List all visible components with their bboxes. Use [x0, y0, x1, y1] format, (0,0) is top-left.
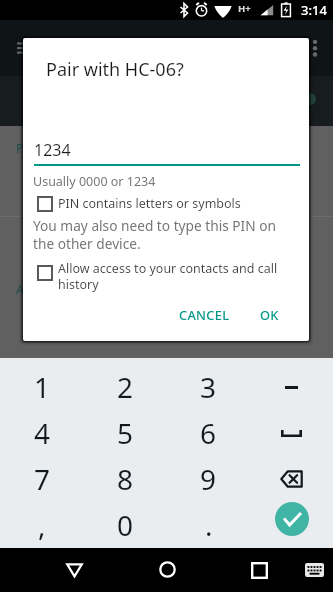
staticText: CANCEL [179, 306, 230, 323]
button[interactable]: Home [159, 561, 176, 578]
staticText: , [38, 506, 46, 544]
button[interactable]: CANCEL [171, 300, 238, 329]
staticText: 3 [200, 368, 217, 406]
button[interactable]: Backspace [250, 456, 333, 502]
button[interactable]: Dash [250, 364, 333, 410]
button[interactable]: Switch keyboard [305, 563, 324, 577]
staticText: Pair with HC-06? [46, 57, 184, 82]
button[interactable]: 7 [0, 456, 84, 502]
staticText: 3:14 [301, 1, 327, 19]
staticText: 1234 [34, 139, 71, 161]
staticText: 5 [117, 414, 134, 452]
other: Space [281, 430, 302, 437]
staticText: Usually 0000 or 1234 [33, 173, 156, 190]
button[interactable]: PIN contains letters or symbols [23, 195, 309, 212]
button[interactable]: Allow access to your contacts and call h… [23, 260, 309, 292]
button[interactable]: Recent apps [251, 562, 268, 579]
button[interactable]: 0 [84, 502, 167, 548]
staticText: Allow access to your contacts and call h… [58, 260, 285, 292]
button[interactable]: . [167, 502, 250, 548]
staticText: PIN contains letters or symbols [58, 195, 241, 212]
staticText: 6 [200, 414, 217, 452]
staticText: 2 [117, 368, 134, 406]
staticText: 4 [34, 414, 51, 452]
button[interactable]: 4 [0, 410, 84, 456]
staticText: You may also need to type this PIN on th… [33, 216, 276, 253]
staticText: AVAILABLE DEVICES [16, 281, 129, 297]
staticText: OK [260, 306, 279, 323]
staticText: 1 [34, 368, 51, 406]
staticText: PAIRED DEVICES [16, 140, 109, 156]
button[interactable]: 6 [167, 410, 250, 456]
button[interactable]: Done [250, 502, 333, 548]
staticText: 8 [117, 460, 134, 498]
button[interactable]: 3 [167, 364, 250, 410]
button[interactable]: OK [252, 300, 287, 329]
other: Backspace [280, 470, 303, 488]
staticText: 7 [34, 460, 51, 498]
button[interactable]: Space [250, 410, 333, 456]
button[interactable]: Navigate up [12, 34, 40, 62]
button[interactable]: , [0, 502, 84, 548]
button[interactable]: 9 [167, 456, 250, 502]
button[interactable]: Back [66, 561, 83, 578]
staticText: H+ [238, 2, 251, 15]
button[interactable]: More options [304, 37, 326, 59]
staticText: . [205, 506, 213, 544]
button[interactable]: 8 [84, 456, 167, 502]
staticText: 9 [200, 460, 217, 498]
button[interactable]: Done [275, 502, 309, 536]
staticText: 0 [117, 506, 134, 544]
button[interactable]: 1 [0, 364, 84, 410]
button[interactable]: 2 [84, 364, 167, 410]
button[interactable]: 5 [84, 410, 167, 456]
